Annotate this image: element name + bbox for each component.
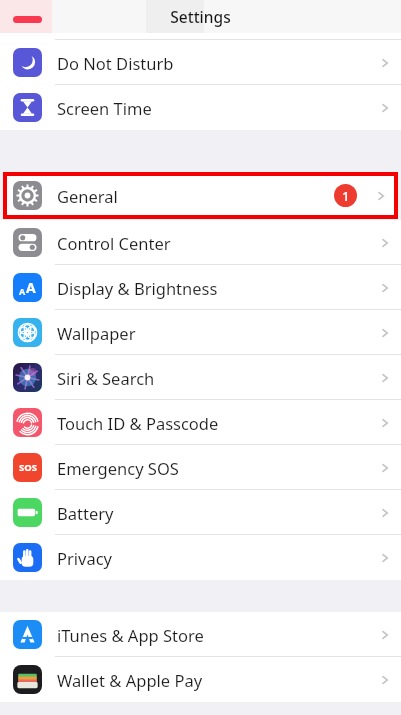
- other: Open: [374, 189, 388, 203]
- staticText: Control Center: [57, 232, 171, 254]
- staticText: A: [19, 285, 26, 297]
- other: Open: [378, 281, 392, 295]
- staticText: Do Not Disturb: [57, 52, 174, 74]
- button[interactable]: Touch ID & Passcode: [0, 400, 401, 445]
- staticText: Siri & Search: [57, 367, 155, 389]
- button[interactable]: iTunes & App Store: [0, 612, 401, 657]
- staticText: Battery: [57, 502, 114, 524]
- staticText: 1: [342, 187, 350, 205]
- staticText: A: [26, 278, 36, 297]
- staticText: Settings: [170, 6, 231, 27]
- other: Open: [378, 551, 392, 565]
- button[interactable]: SOS: [0, 445, 401, 490]
- other: Open: [378, 326, 392, 340]
- staticText: Screen Time: [57, 97, 152, 119]
- button[interactable]: Siri & Search: [0, 355, 401, 400]
- button[interactable]: Do Not Disturb: [0, 40, 401, 85]
- staticText: Display & Brightness: [57, 277, 218, 299]
- other: Open: [378, 236, 392, 250]
- button[interactable]: Privacy: [0, 535, 401, 580]
- staticText: Touch ID & Passcode: [57, 412, 219, 434]
- other: Open: [378, 628, 392, 642]
- button[interactable]: Wallpaper: [0, 310, 401, 355]
- other: Open: [378, 461, 392, 475]
- staticText: Emergency SOS: [57, 457, 179, 479]
- other: Open: [378, 56, 392, 70]
- button[interactable]: Control Center: [0, 220, 401, 265]
- staticText: iTunes & App Store: [57, 624, 204, 646]
- button[interactable]: Wallet & Apple Pay: [0, 657, 401, 702]
- other: Open: [378, 673, 392, 687]
- other: Open: [378, 371, 392, 385]
- staticText: SOS: [19, 461, 37, 474]
- button[interactable]: A: [0, 265, 401, 310]
- other: Open: [378, 101, 392, 115]
- staticText: Wallpaper: [57, 322, 136, 344]
- button[interactable]: General: [7, 176, 394, 215]
- other: Open: [378, 506, 392, 520]
- button[interactable]: Screen Time: [0, 85, 401, 130]
- staticText: Privacy: [57, 547, 113, 569]
- other: Open: [378, 416, 392, 430]
- staticText: General: [57, 185, 118, 207]
- staticText: Wallet & Apple Pay: [57, 669, 203, 691]
- button[interactable]: Battery: [0, 490, 401, 535]
